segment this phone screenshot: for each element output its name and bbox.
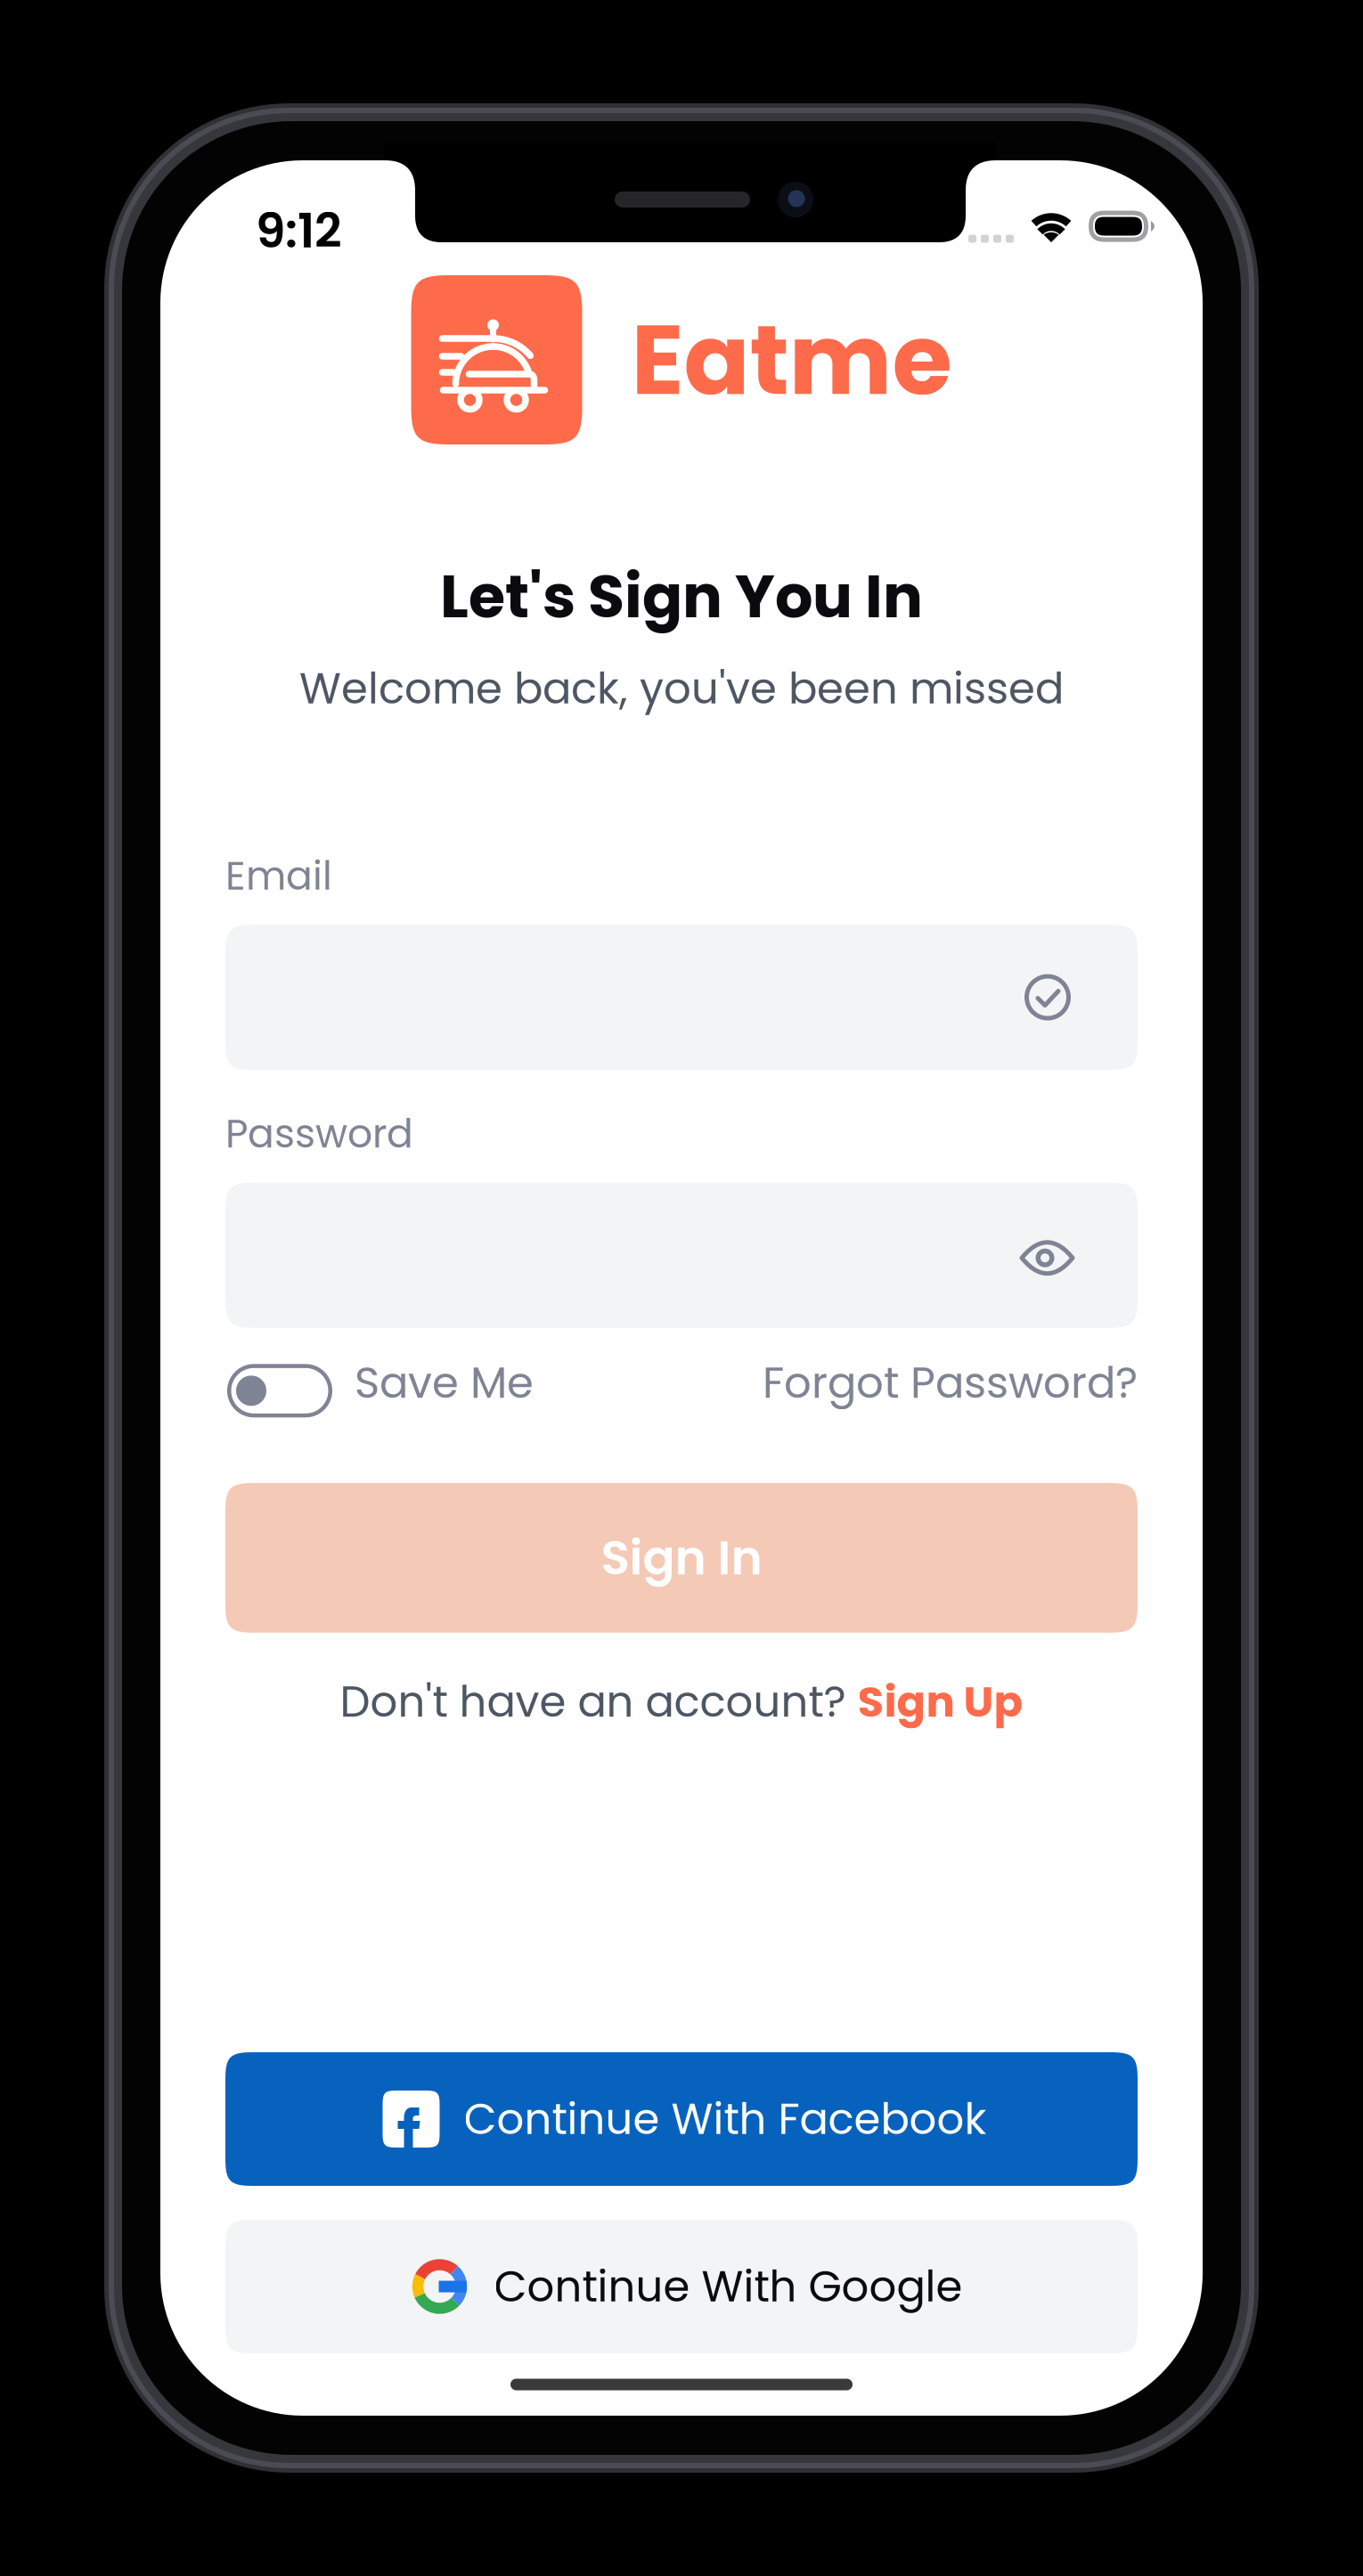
button[interactable]: Save Me [225, 1353, 534, 1413]
staticText: Email [225, 848, 332, 903]
staticText: Sign In [601, 1525, 762, 1591]
button[interactable]: Don't have an account? [340, 1672, 1023, 1732]
button[interactable]: Continue With Google [225, 2220, 1138, 2353]
staticText: Save Me [355, 1353, 534, 1413]
staticText: Continue With Facebook [464, 2089, 987, 2149]
button[interactable] [225, 1183, 1138, 1328]
staticText: Welcome back, you've been missed [299, 659, 1064, 718]
staticText: Sign Up [857, 1672, 1023, 1732]
button[interactable]: Continue With Facebook [225, 2052, 1138, 2186]
staticText: Eatme [631, 292, 952, 428]
button[interactable]: Sign In [225, 1483, 1138, 1633]
staticText: Don't have an account? [340, 1672, 857, 1732]
button[interactable]: Forgot Password? [763, 1353, 1138, 1413]
staticText: 9:12 [256, 197, 342, 264]
staticText: Password [225, 1106, 413, 1161]
button[interactable] [225, 925, 1138, 1070]
staticText: Continue With Google [494, 2257, 963, 2316]
staticText: Let's Sign You In [440, 555, 923, 638]
staticText: Forgot Password? [763, 1353, 1138, 1413]
